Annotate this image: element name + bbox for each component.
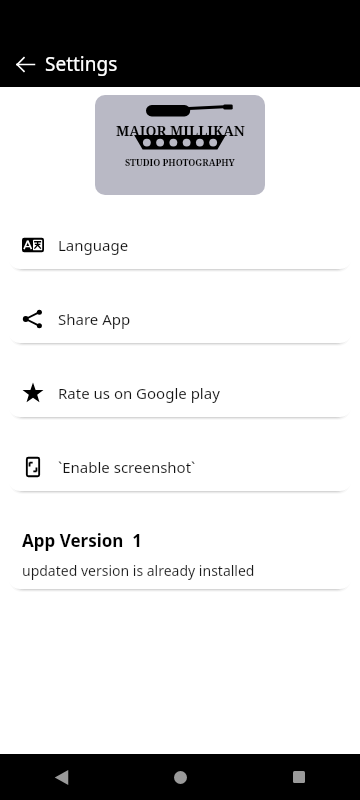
button[interactable]: Language (8, 221, 352, 269)
staticText: Settings (45, 51, 118, 77)
staticText: App Version 1 (22, 529, 142, 552)
button[interactable]: Share App (8, 295, 352, 343)
button[interactable]: Recent apps (280, 758, 318, 796)
staticText: `Enable screenshot` (58, 457, 196, 477)
staticText: Share App (58, 309, 131, 329)
button[interactable]: Rate us on Google play (8, 369, 352, 417)
button[interactable]: `Enable screenshot` (8, 443, 352, 491)
staticText: MAJOR MILLIKAN (116, 121, 245, 140)
staticText: STUDIO PHOTOGRAPHY (125, 156, 235, 168)
button[interactable]: Back (42, 758, 80, 796)
staticText: updated version is already installed (22, 561, 255, 580)
staticText: Rate us on Google play (58, 383, 220, 403)
button[interactable]: Home (161, 758, 199, 796)
staticText: Language (58, 235, 129, 255)
button[interactable]: Back (7, 46, 43, 82)
